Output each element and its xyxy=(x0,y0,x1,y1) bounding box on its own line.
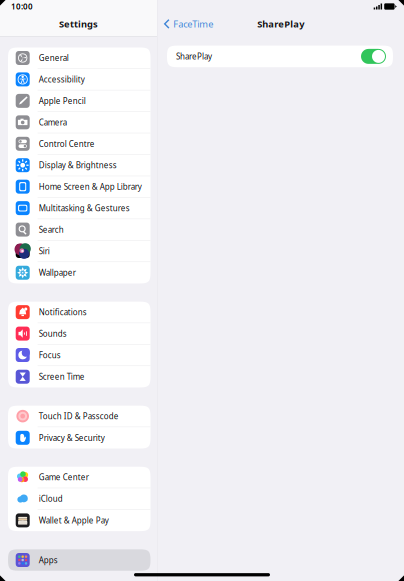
button[interactable]: Touch ID & Passcode xyxy=(8,406,150,427)
staticText: Camera xyxy=(39,117,67,128)
staticText: Search xyxy=(39,224,64,235)
staticText: Apps xyxy=(39,555,58,565)
button[interactable]: Home Screen & App Library xyxy=(8,176,150,198)
button[interactable]: Search xyxy=(8,219,150,240)
button[interactable]: Camera xyxy=(8,112,150,133)
button[interactable]: Game Center xyxy=(8,467,150,488)
staticText: Siri xyxy=(39,246,50,256)
button[interactable]: Display & Brightness xyxy=(8,155,150,176)
staticText: Wallpaper xyxy=(39,267,76,278)
staticText: Game Center xyxy=(39,472,89,482)
staticText: Privacy & Security xyxy=(39,432,105,443)
staticText: Sounds xyxy=(39,328,67,339)
staticText: Accessibility xyxy=(39,74,85,85)
button[interactable]: Apps xyxy=(8,549,150,571)
staticText: SharePlay xyxy=(176,51,212,62)
button[interactable]: Screen Time xyxy=(8,366,150,387)
staticText: General xyxy=(39,53,69,63)
button[interactable]: SharePlay xyxy=(157,46,404,67)
button[interactable]: iCloud xyxy=(8,488,150,510)
button[interactable]: Siri xyxy=(8,240,150,262)
button[interactable]: Wallpaper xyxy=(8,262,150,283)
staticText: Notifications xyxy=(39,307,87,317)
staticText: Apple Pencil xyxy=(39,96,86,106)
staticText: Settings xyxy=(59,18,98,30)
staticText: Display & Brightness xyxy=(39,160,117,170)
staticText: Multitasking & Gestures xyxy=(39,203,130,213)
staticText: Home Screen & App Library xyxy=(39,181,142,192)
button[interactable]: Focus xyxy=(8,344,150,366)
staticText: Focus xyxy=(39,350,61,360)
button[interactable]: Control Centre xyxy=(8,133,150,155)
button[interactable]: Wallet & Apple Pay xyxy=(8,510,150,531)
staticText: 10:00 xyxy=(11,1,33,12)
button[interactable]: Accessibility xyxy=(8,69,150,90)
button[interactable]: General xyxy=(8,47,150,69)
button[interactable]: Sounds xyxy=(8,323,150,344)
button[interactable]: Privacy & Security xyxy=(8,427,150,448)
button[interactable]: Apple Pencil xyxy=(8,90,150,112)
staticText: FaceTime xyxy=(173,18,213,30)
staticText: Touch ID & Passcode xyxy=(39,411,119,421)
staticText: iCloud xyxy=(39,493,63,504)
staticText: Control Centre xyxy=(39,138,95,149)
button[interactable]: Notifications xyxy=(8,302,150,323)
button[interactable]: FaceTime xyxy=(157,13,217,35)
staticText: SharePlay xyxy=(257,18,304,30)
staticText: Screen Time xyxy=(39,371,85,382)
staticText: Wallet & Apple Pay xyxy=(39,515,109,526)
button[interactable]: Multitasking & Gestures xyxy=(8,198,150,219)
